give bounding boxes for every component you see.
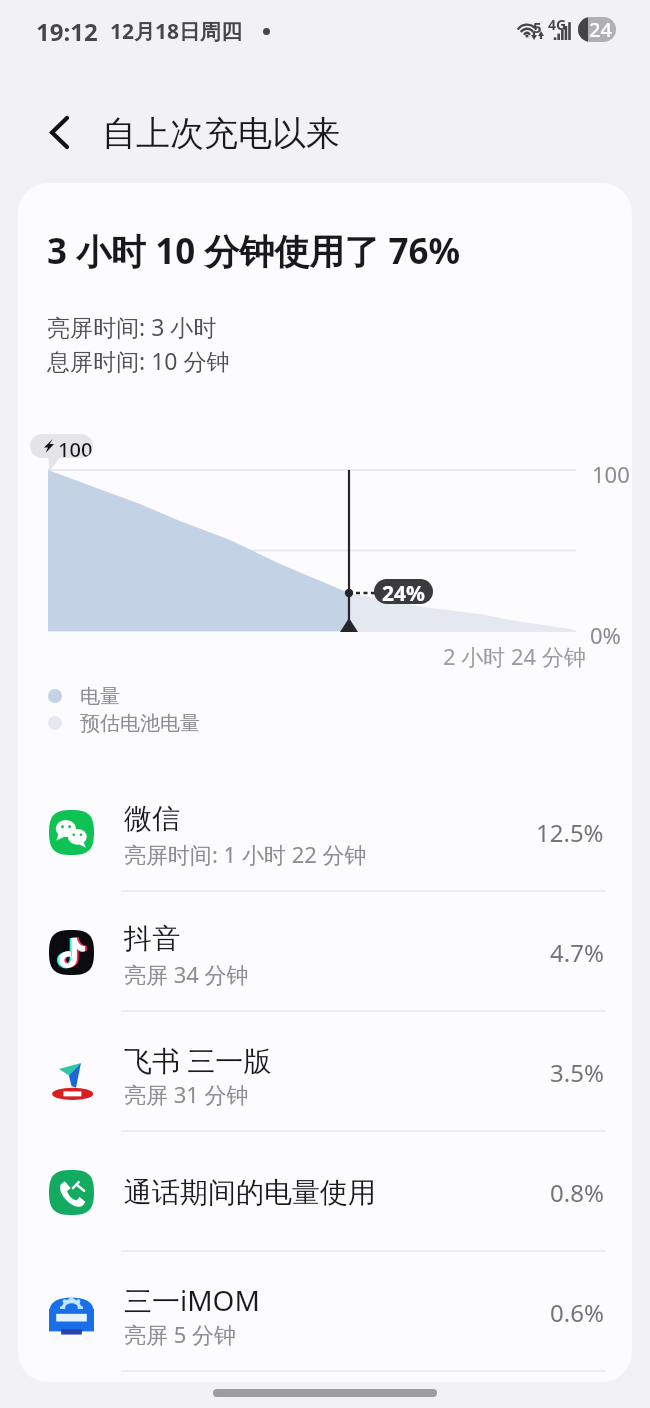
- staticText: 12.5%: [536, 816, 604, 849]
- staticText: 亮屏 34 分钟: [124, 959, 249, 989]
- staticText: 预估电池电量: [80, 711, 200, 736]
- staticText: 3 小时 10 分钟使用了 76%: [47, 227, 461, 275]
- staticText: 100: [592, 459, 630, 489]
- staticText: 自上次充电以来: [102, 112, 340, 155]
- staticText: 三一iMOM: [124, 1281, 260, 1319]
- button[interactable]: 三一iMOM: [18, 1252, 632, 1372]
- staticText: 5: [533, 17, 542, 37]
- staticText: 抖音: [124, 921, 180, 956]
- button[interactable]: 微信: [18, 772, 632, 892]
- staticText: 0.8%: [550, 1176, 604, 1209]
- button[interactable]: 通话期间的电量使用: [18, 1132, 632, 1252]
- staticText: 亮屏时间: 1 小时 22 分钟: [124, 839, 367, 869]
- staticText: 3.5%: [550, 1056, 604, 1089]
- staticText: 100: [58, 436, 93, 458]
- staticText: 通话期间的电量使用: [124, 1175, 376, 1210]
- button[interactable]: 飞书 三一版: [18, 1012, 632, 1132]
- staticText: 亮屏 5 分钟: [124, 1319, 237, 1349]
- staticText: 0.6%: [550, 1296, 604, 1329]
- staticText: 4G: [548, 15, 567, 34]
- staticText: 2 小时 24 分钟: [443, 641, 586, 671]
- staticText: 飞书 三一版: [124, 1041, 272, 1079]
- staticText: 4.7%: [550, 936, 604, 969]
- staticText: 24%: [382, 579, 425, 604]
- staticText: 19:12: [36, 15, 98, 48]
- staticText: 亮屏 31 分钟: [124, 1079, 249, 1109]
- staticText: 12月18日周四: [110, 17, 243, 46]
- staticText: 息屏时间: 10 分钟: [47, 345, 230, 376]
- staticText: 亮屏时间: 3 小时: [47, 311, 217, 342]
- staticText: 电量: [80, 684, 120, 709]
- staticText: 0%: [590, 620, 621, 650]
- staticText: 24: [589, 17, 612, 41]
- staticText: 微信: [124, 801, 180, 836]
- button[interactable]: 抖音: [18, 892, 632, 1012]
- button[interactable]: Back: [29, 102, 89, 162]
